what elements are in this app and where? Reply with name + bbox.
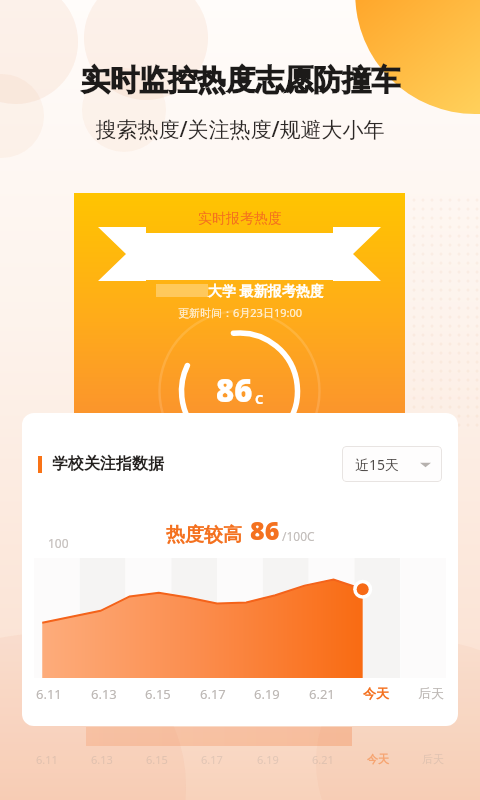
staticText: 6.15 xyxy=(146,752,168,767)
staticText: 实时报考热度 xyxy=(198,210,282,228)
staticText: 搜索热度/关注热度/规避大小年 xyxy=(95,115,385,144)
staticText: 86 xyxy=(216,369,253,411)
staticText: 学校关注指数据 xyxy=(52,454,164,474)
staticText: 近15天 xyxy=(355,455,400,474)
staticText: C xyxy=(255,390,264,408)
staticText: 6.19 xyxy=(254,685,280,703)
staticText: 6.19 xyxy=(257,752,279,767)
staticText: 6.13 xyxy=(91,685,117,703)
staticText: 6.17 xyxy=(200,685,226,703)
staticText: /100C xyxy=(282,528,315,544)
staticText: 100 xyxy=(48,535,69,551)
staticText: 大学 最新报考热度 xyxy=(208,281,324,300)
staticText: 后天 xyxy=(418,685,444,701)
button[interactable]: 实时报考热度 xyxy=(74,193,405,438)
staticText: 6.15 xyxy=(145,685,171,703)
staticText: 6.17 xyxy=(201,752,223,767)
staticText: 今天 xyxy=(363,685,389,701)
staticText: 6.21 xyxy=(312,752,334,767)
other: Select range xyxy=(420,459,431,470)
staticText: 86 xyxy=(250,513,280,547)
staticText: 热度较高 xyxy=(166,523,242,547)
staticText: 6.13 xyxy=(91,752,113,767)
staticText: 6.11 xyxy=(36,752,58,767)
button[interactable]: 近15天 xyxy=(342,446,442,482)
staticText: 后天 xyxy=(422,752,444,766)
staticText: 更新时间：6月23日19:00 xyxy=(178,305,302,320)
staticText: 6.11 xyxy=(36,685,62,703)
staticText: 今天 xyxy=(367,752,389,766)
staticText: 实时监控热度志愿防撞车 xyxy=(81,62,400,99)
staticText: 6.21 xyxy=(309,685,335,703)
